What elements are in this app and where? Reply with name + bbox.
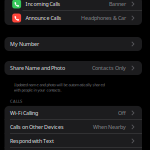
staticText: Wi-Fi Calling bbox=[10, 109, 38, 116]
button[interactable]: Incoming Calls bbox=[4, 0, 142, 11]
staticText: Contacts Only bbox=[92, 64, 126, 72]
button[interactable]: Share Name and Photo bbox=[4, 61, 142, 75]
staticText: Banner bbox=[109, 0, 126, 8]
staticText: Respond with Text bbox=[10, 137, 54, 144]
button[interactable]: Announce Calls bbox=[4, 11, 142, 25]
staticText: CALLS bbox=[10, 99, 22, 104]
staticText: Headphones & Car bbox=[81, 14, 126, 22]
staticText: Announce Calls bbox=[25, 14, 61, 22]
button[interactable]: Calls on Other Devices bbox=[4, 120, 142, 134]
staticText: When Nearby bbox=[93, 123, 126, 130]
staticText: Off bbox=[118, 109, 126, 116]
staticText: Share Name and Photo bbox=[10, 64, 65, 72]
staticText: Incoming Calls bbox=[25, 0, 60, 8]
button[interactable]: Respond with Text bbox=[4, 134, 142, 148]
button[interactable]: Wi-Fi Calling bbox=[4, 106, 142, 120]
staticText: Updated name and photo will be automatic… bbox=[13, 82, 104, 93]
staticText: My Number bbox=[10, 40, 39, 48]
staticText: Calls on Other Devices bbox=[10, 123, 64, 130]
button[interactable]: My Number bbox=[4, 37, 142, 51]
